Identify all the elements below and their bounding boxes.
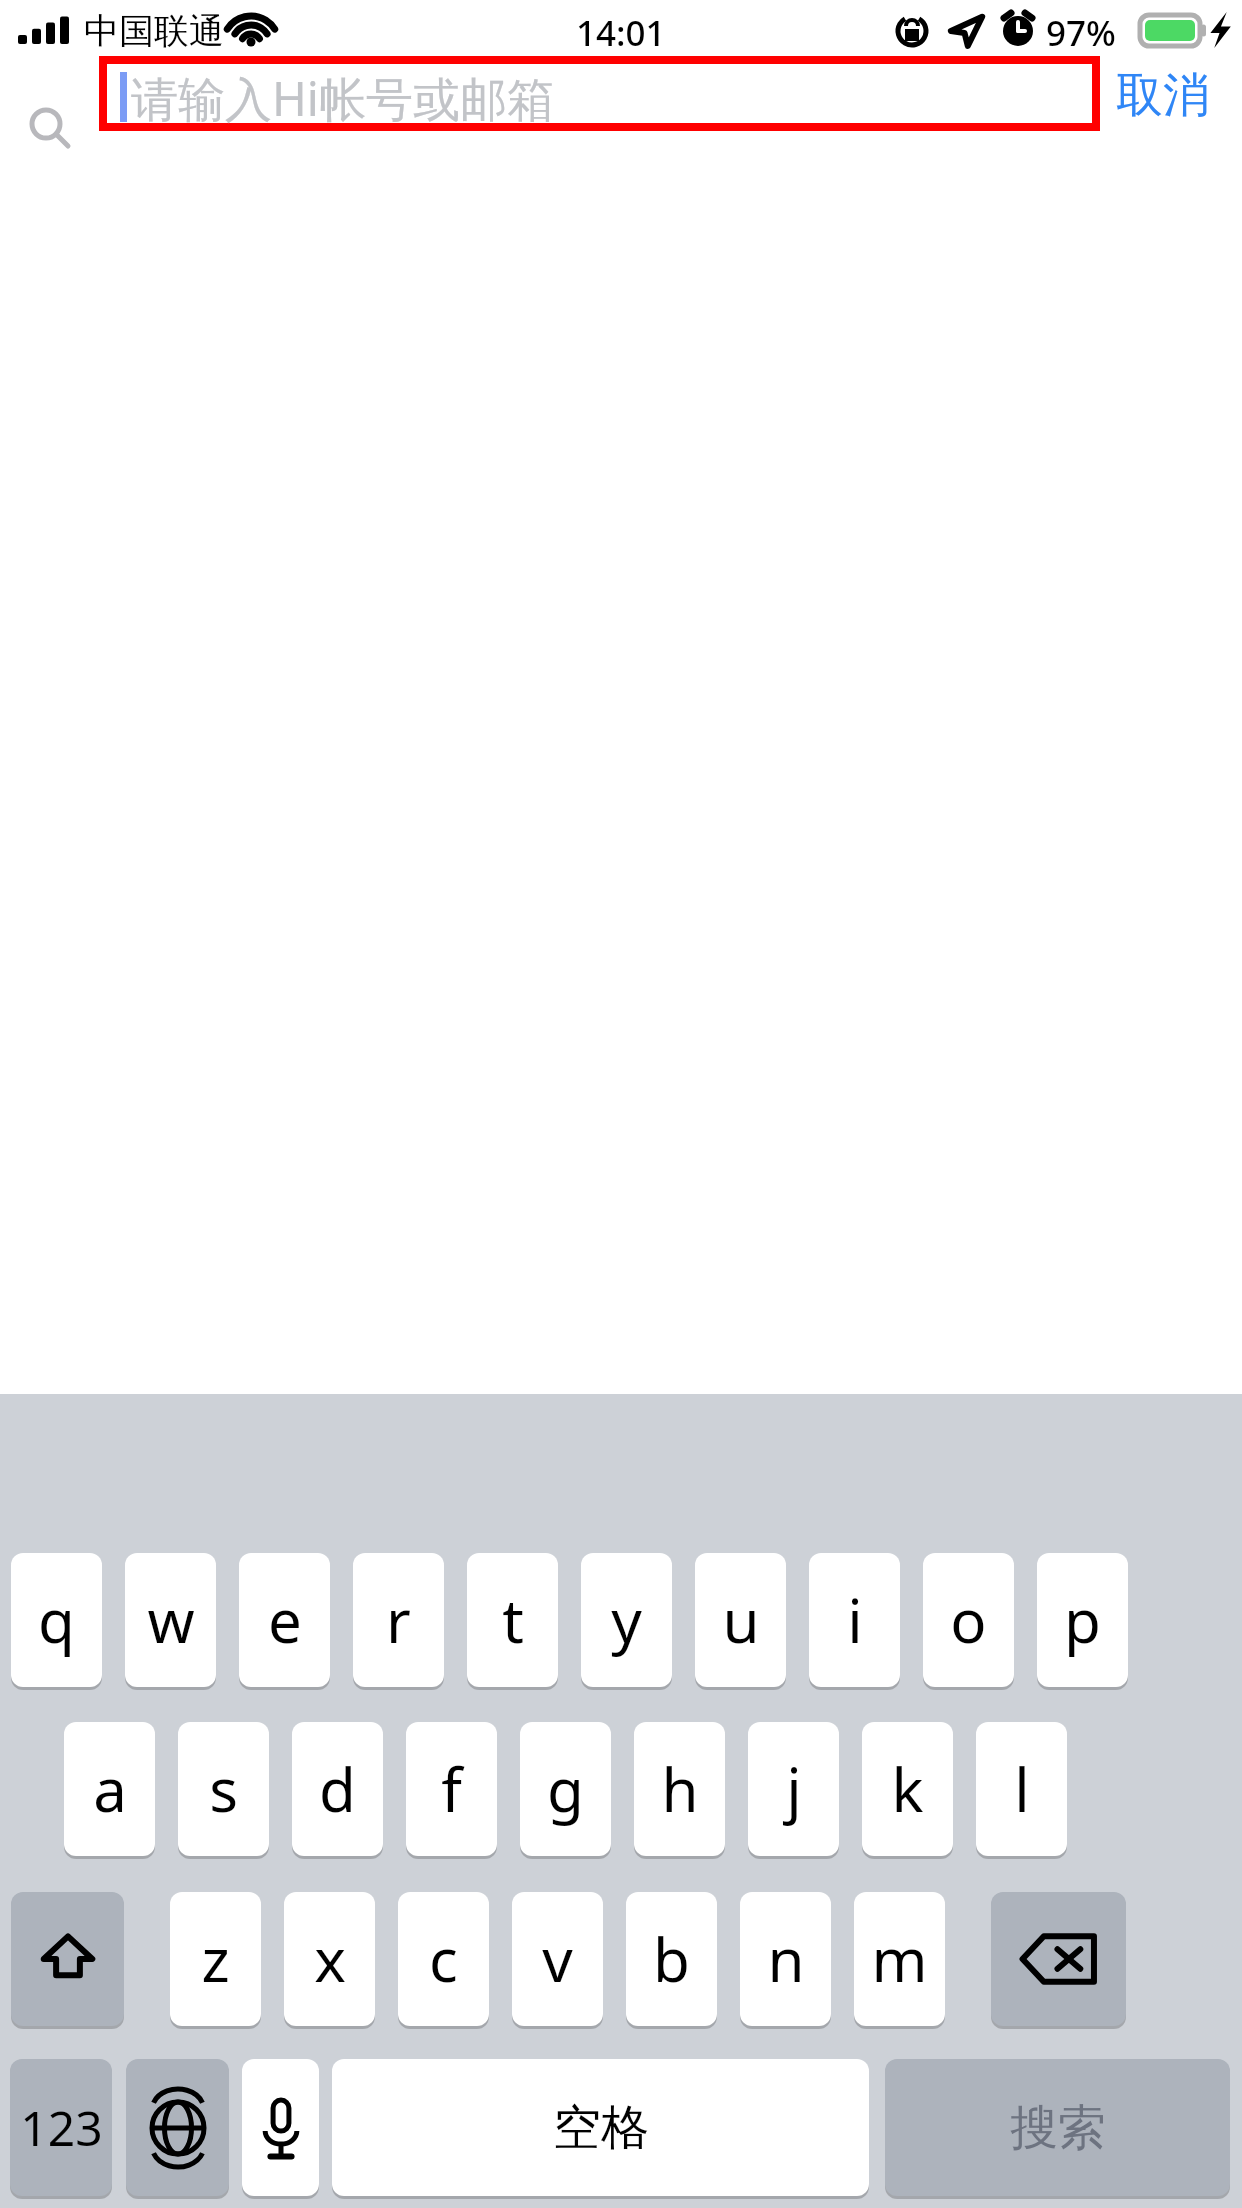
staticText: 97% [1046,9,1116,57]
button[interactable]: x [284,1892,375,2026]
staticText: z [201,1918,230,2000]
staticText: r [386,1579,411,1661]
staticText: j [786,1748,802,1830]
button[interactable]: m [854,1892,945,2026]
button[interactable]: 请输入Hi帐号或邮箱 [103,60,1096,127]
staticText: p [1064,1579,1101,1661]
button[interactable]: u [695,1553,786,1687]
button[interactable]: a [64,1722,155,1856]
button[interactable]: l [976,1722,1067,1856]
button[interactable]: b [626,1892,717,2026]
button[interactable]: y [581,1553,672,1687]
staticText: f [441,1748,462,1830]
button[interactable]: k [862,1722,953,1856]
staticText: x [314,1918,346,2000]
staticText: b [653,1918,690,2000]
staticText: a [93,1748,127,1830]
staticText: 请输入Hi帐号或邮箱 [131,66,554,130]
button[interactable]: g [520,1722,611,1856]
button[interactable]: r [353,1553,444,1687]
button[interactable]: 搜索 [885,2059,1230,2196]
staticText: 空格 [553,2098,649,2158]
staticText: n [767,1918,805,2000]
button[interactable]: o [923,1553,1014,1687]
button[interactable]: t [467,1553,558,1687]
staticText: c [429,1918,458,2000]
staticText: h [661,1748,699,1830]
button[interactable]: Shift [11,1892,124,2026]
staticText: e [268,1579,302,1661]
button[interactable]: z [170,1892,261,2026]
staticText: 搜索 [1010,2098,1106,2158]
staticText: d [319,1748,356,1830]
button[interactable]: 取消 [1116,66,1210,125]
staticText: l [1014,1748,1030,1830]
staticText: t [502,1579,524,1661]
button[interactable]: w [125,1553,216,1687]
staticText: 中国联通 [84,9,224,53]
staticText: 123 [20,2095,103,2160]
button[interactable]: 123 [10,2059,112,2196]
staticText: o [950,1579,987,1661]
button[interactable]: s [178,1722,269,1856]
button[interactable]: i [809,1553,900,1687]
button[interactable]: d [292,1722,383,1856]
button[interactable]: e [239,1553,330,1687]
staticText: q [38,1579,75,1661]
staticText: 14:01 [576,9,666,57]
button[interactable]: v [512,1892,603,2026]
staticText: m [871,1918,928,2000]
button[interactable]: c [398,1892,489,2026]
staticText: w [147,1579,195,1661]
staticText: k [891,1748,924,1830]
button[interactable]: h [634,1722,725,1856]
button[interactable]: 空格 [332,2059,869,2196]
button[interactable]: f [406,1722,497,1856]
button[interactable]: p [1037,1553,1128,1687]
staticText: s [209,1748,238,1830]
staticText: g [547,1748,584,1830]
button[interactable]: j [748,1722,839,1856]
staticText: v [542,1918,573,2000]
staticText: u [722,1579,760,1661]
button[interactable]: Delete [991,1892,1126,2026]
staticText: y [611,1579,642,1661]
button[interactable]: Dictate [242,2059,319,2196]
button[interactable]: q [11,1553,102,1687]
button[interactable]: n [740,1892,831,2026]
staticText: i [847,1579,863,1661]
button[interactable]: Switch keyboard [126,2059,229,2196]
